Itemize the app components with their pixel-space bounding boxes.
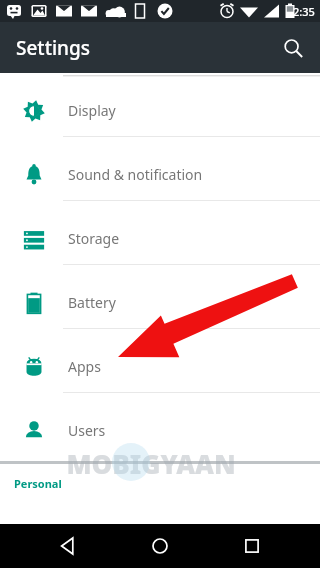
button[interactable]: Home <box>136 524 184 568</box>
button[interactable]: Display <box>0 85 320 136</box>
staticText: MOBIGYAAN <box>66 446 236 481</box>
button[interactable]: Back <box>44 524 92 568</box>
staticText: Display <box>68 101 116 120</box>
staticText: Users <box>68 421 106 440</box>
staticText: Battery <box>68 293 116 312</box>
button[interactable]: Search <box>273 28 313 68</box>
button[interactable]: Storage <box>0 213 320 264</box>
button[interactable]: Recent apps <box>228 524 276 568</box>
button[interactable]: Apps <box>0 341 320 392</box>
staticText: Storage <box>68 229 120 248</box>
staticText: 2:35 <box>293 4 315 19</box>
staticText: Sound & notification <box>68 165 203 184</box>
staticText: Apps <box>68 357 101 376</box>
button[interactable]: Users <box>0 405 320 456</box>
button[interactable]: Battery <box>0 277 320 328</box>
staticText: Personal <box>14 476 62 491</box>
button[interactable]: Sound & notification <box>0 149 320 200</box>
staticText: Settings <box>16 35 90 61</box>
